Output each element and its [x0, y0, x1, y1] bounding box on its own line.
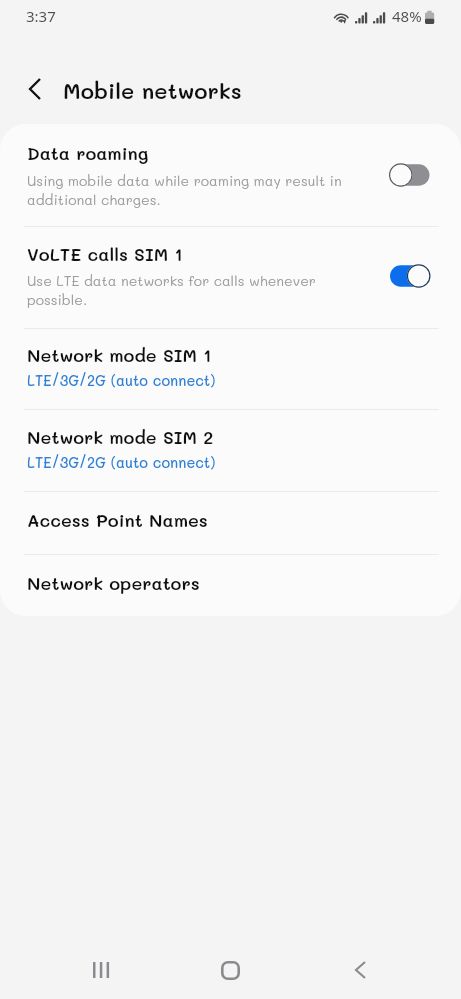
- staticText: Network mode SIM 2: [27, 425, 214, 448]
- button[interactable]: Data roaming off: [386, 160, 434, 190]
- staticText: Network operators: [27, 571, 200, 594]
- button[interactable]: [0, 409, 461, 491]
- staticText: Network mode SIM 1: [27, 343, 212, 366]
- staticText: Use LTE data networks for calls whenever…: [27, 271, 316, 308]
- button[interactable]: Navigate up: [10, 64, 60, 114]
- button[interactable]: Recents: [71, 950, 131, 990]
- staticText: VoLTE calls SIM 1: [27, 242, 183, 265]
- staticText: 3:37: [26, 6, 56, 26]
- button[interactable]: [0, 554, 461, 616]
- staticText: Data roaming: [27, 141, 149, 164]
- staticText: Access Point Names: [27, 508, 208, 531]
- button[interactable]: Back: [330, 950, 390, 990]
- staticText: Mobile networks: [63, 76, 242, 105]
- button[interactable]: [0, 226, 461, 328]
- staticText: Using mobile data while roaming may resu…: [27, 171, 342, 208]
- button[interactable]: Data roaming on: [386, 261, 434, 291]
- staticText: 48%: [392, 6, 422, 26]
- staticText: LTE/3G/2G (auto connect): [27, 371, 216, 390]
- button[interactable]: [0, 124, 461, 226]
- button[interactable]: [0, 328, 461, 410]
- staticText: LTE/3G/2G (auto connect): [27, 453, 216, 472]
- button[interactable]: [0, 491, 461, 554]
- button[interactable]: Home: [200, 950, 260, 990]
